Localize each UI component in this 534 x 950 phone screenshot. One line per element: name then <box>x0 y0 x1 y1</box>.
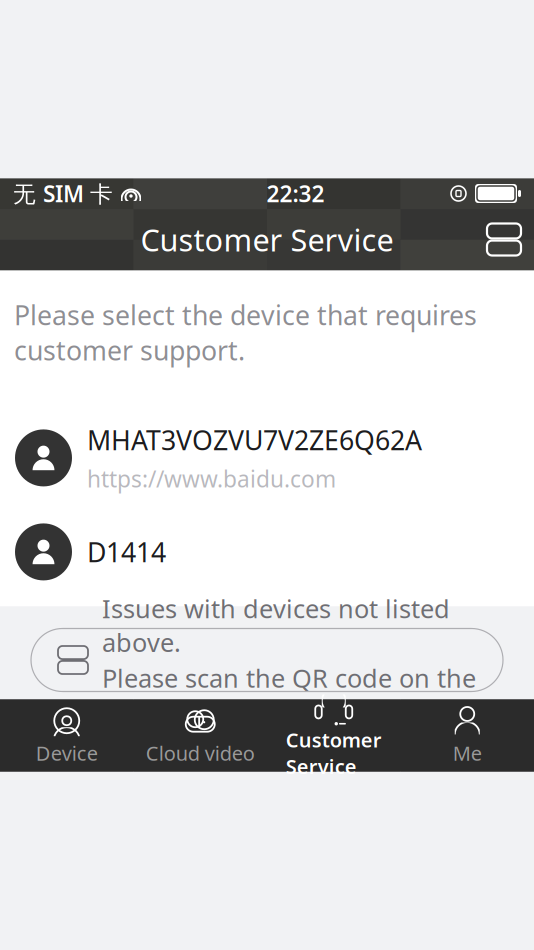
button[interactable]: Cloud video <box>133 699 267 771</box>
button[interactable]: Me <box>400 699 534 771</box>
staticText: Please scan the QR code on the device. <box>102 661 476 728</box>
button[interactable]: MHAT3VOZVU7V2ZE6Q62A <box>0 408 534 508</box>
button[interactable]: D1414 <box>0 508 534 596</box>
staticText: D1414 <box>87 534 166 570</box>
staticText: Cloud video <box>146 740 255 766</box>
button[interactable]: Scan device code <box>474 211 534 267</box>
button[interactable]: Issues with devices not listed above. <box>31 628 503 691</box>
staticText: Customer Service <box>286 726 382 779</box>
staticText: MHAT3VOZVU7V2ZE6Q62A <box>87 422 422 458</box>
staticText: Customer Service <box>140 219 393 260</box>
button[interactable]: Customer Service <box>267 699 400 771</box>
staticText: Me <box>453 740 482 766</box>
staticText: https://www.baidu.com <box>87 464 336 494</box>
button[interactable]: Device <box>0 699 133 771</box>
staticText: Issues with devices not listed above. <box>102 592 450 659</box>
staticText: Please select the device that requires c… <box>14 297 477 368</box>
staticText: 无 SIM 卡 <box>13 178 113 208</box>
staticText: Device <box>36 740 98 766</box>
staticText: 22:32 <box>266 178 324 208</box>
